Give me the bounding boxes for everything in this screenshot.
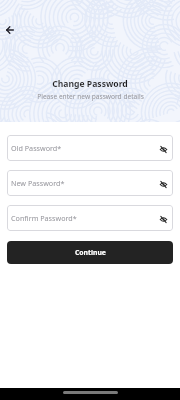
button[interactable]: New Password* <box>7 170 173 196</box>
staticText: Please enter new password details <box>37 92 144 101</box>
button[interactable]: Show password <box>156 212 170 226</box>
button[interactable]: Show password <box>156 177 170 191</box>
staticText: New Password* <box>11 178 65 188</box>
button[interactable]: Back <box>2 22 18 38</box>
button[interactable]: Continue <box>7 241 173 264</box>
button[interactable]: Confirm Password* <box>7 205 173 231</box>
staticText: Confirm Password* <box>11 213 77 223</box>
button[interactable]: Show password <box>156 142 170 156</box>
staticText: Change Password <box>52 78 128 90</box>
staticText: Continue <box>75 248 106 257</box>
staticText: Old Password* <box>11 143 62 153</box>
button[interactable]: Old Password* <box>7 135 173 161</box>
